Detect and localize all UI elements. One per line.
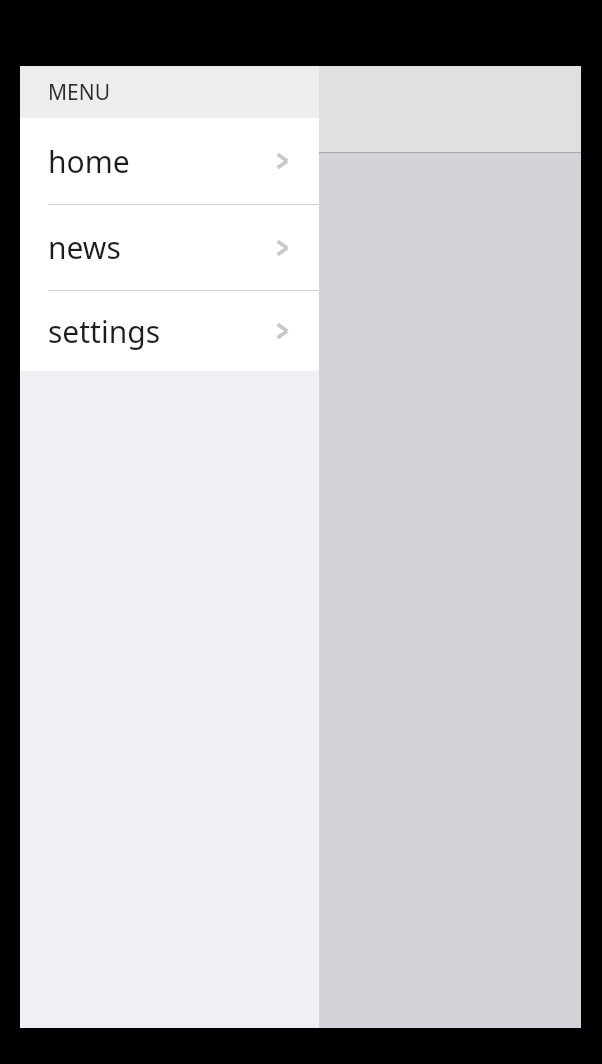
button[interactable]: settings [20, 291, 319, 371]
staticText: home [48, 89, 130, 130]
staticText: MENU [48, 78, 111, 107]
staticText: settings [48, 311, 161, 352]
button[interactable]: news [20, 205, 319, 290]
staticText: home. [48, 173, 138, 214]
button[interactable]: home [20, 118, 319, 204]
staticText: news [48, 227, 121, 268]
staticText: home [48, 141, 130, 182]
